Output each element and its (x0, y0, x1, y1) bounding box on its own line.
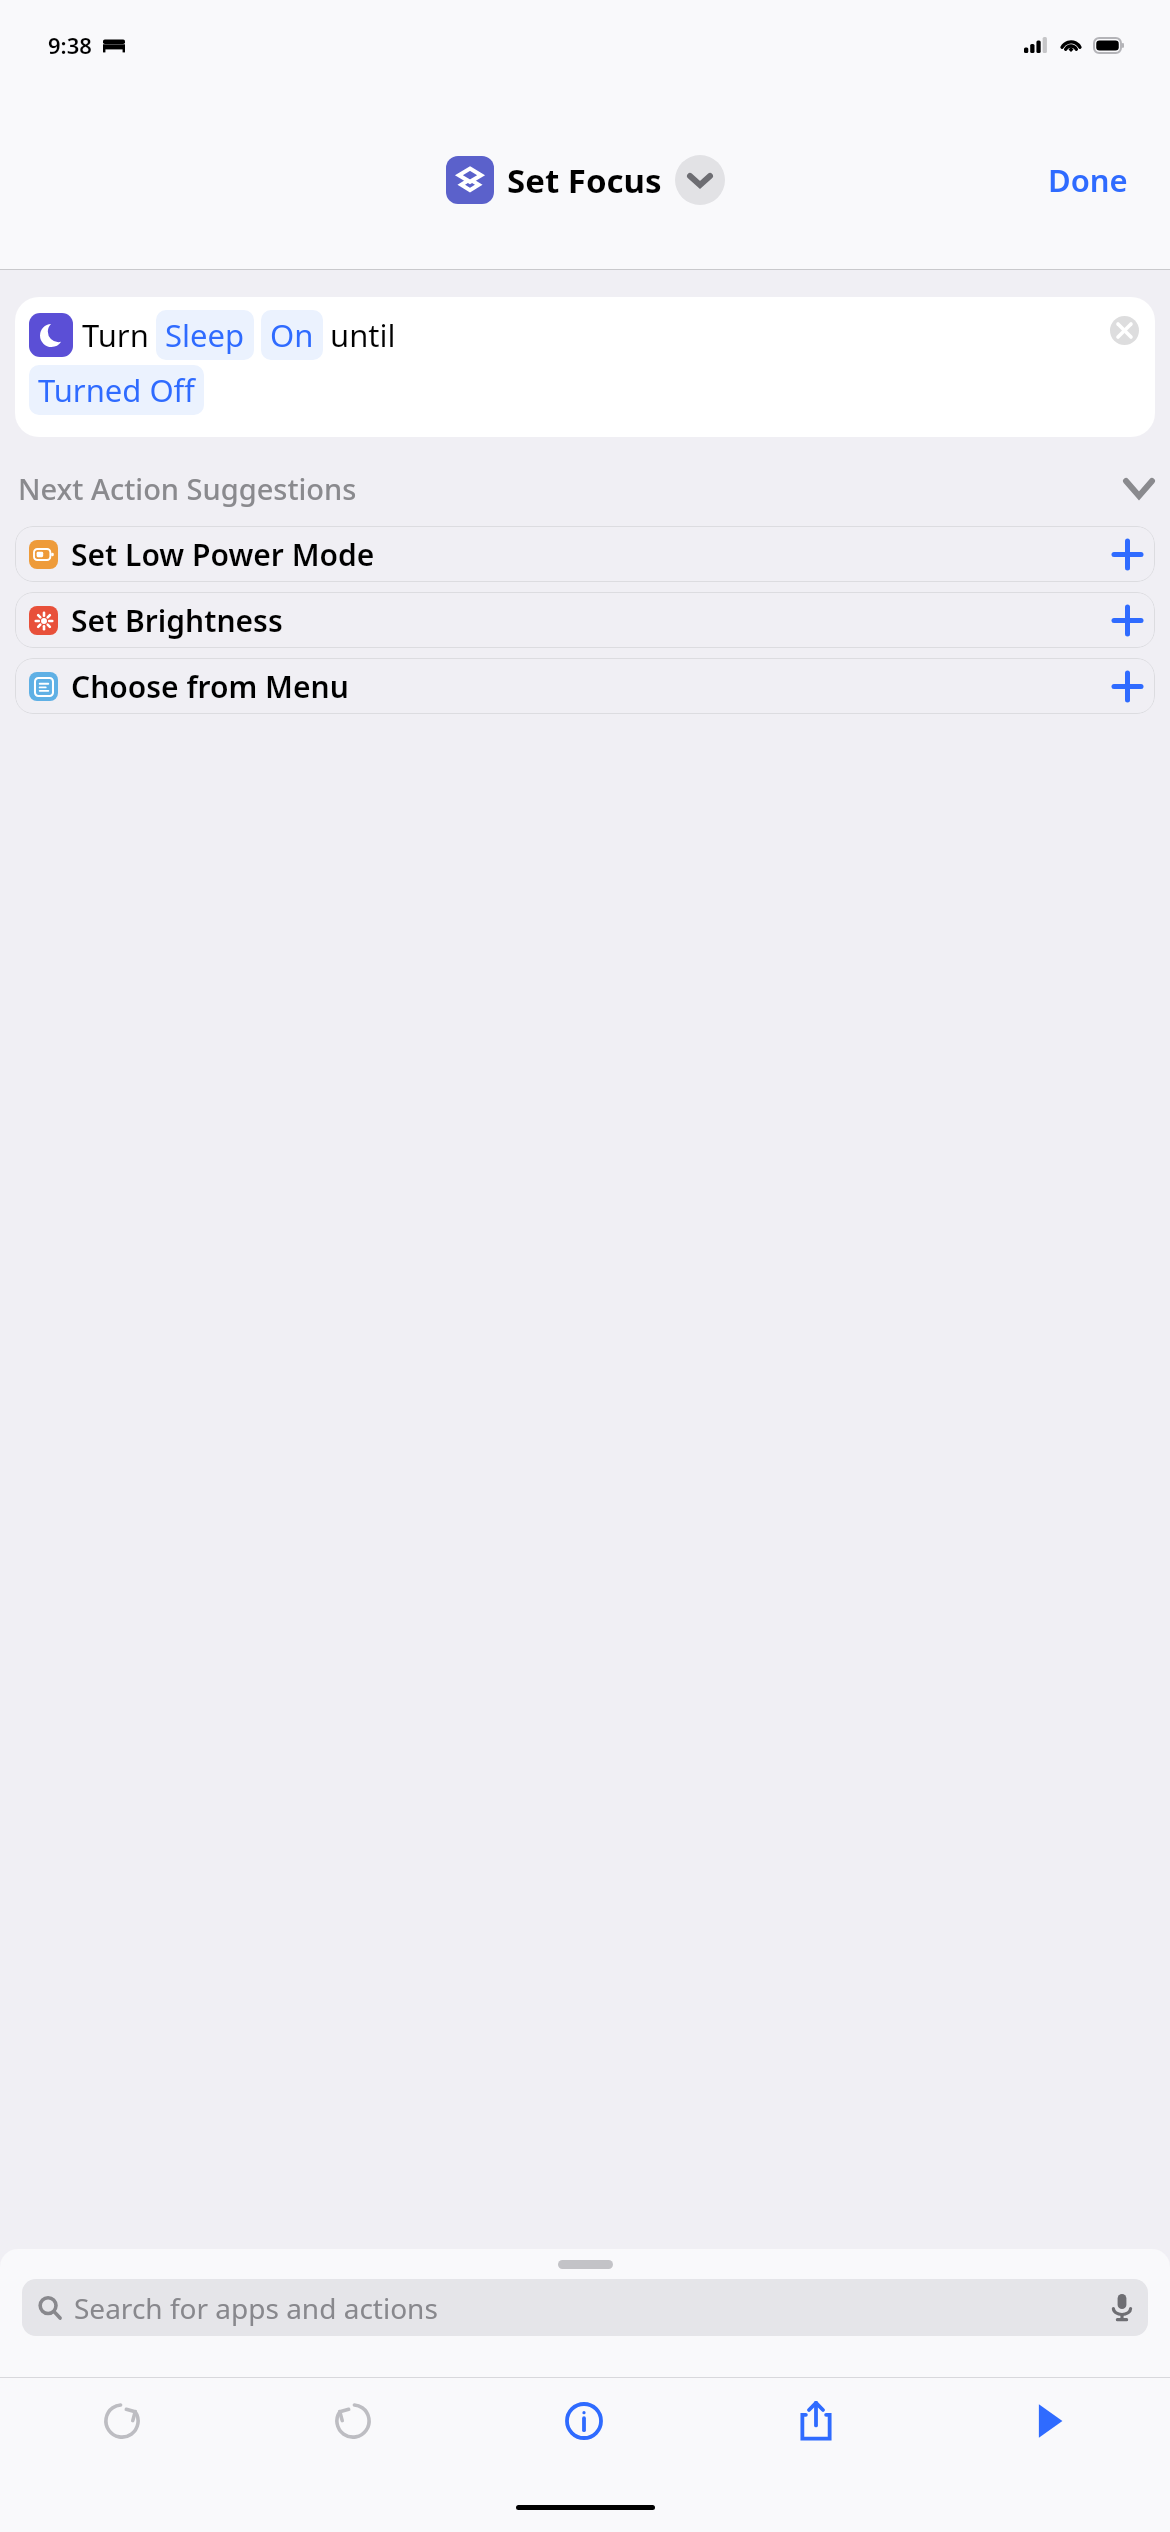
staticText: Next Action Suggestions (18, 469, 357, 508)
staticText: Sleep (165, 314, 245, 356)
staticText: Search for apps and actions (74, 2289, 438, 2327)
button[interactable]: Turn (15, 297, 1155, 437)
other: Voice search (1112, 2294, 1132, 2321)
button[interactable]: Done (1036, 151, 1140, 209)
button[interactable]: Set Low Power Mode (15, 526, 1155, 582)
button[interactable]: Undo (6, 2378, 237, 2464)
button[interactable]: Details (468, 2378, 700, 2464)
button[interactable]: Search for apps and actions (22, 2279, 1148, 2336)
button[interactable]: Share (700, 2378, 932, 2464)
staticText: Set Focus (507, 158, 662, 203)
button[interactable]: Redo (237, 2378, 468, 2464)
button[interactable]: Turned Off (29, 365, 204, 415)
button[interactable]: Choose from Menu (15, 658, 1155, 714)
staticText: Choose from Menu (71, 666, 349, 707)
staticText: 9:38 (48, 30, 92, 60)
staticText: Done (1048, 159, 1128, 201)
staticText: Turned Off (38, 369, 195, 411)
staticText: Set Brightness (71, 600, 283, 641)
button[interactable]: Sleep (156, 310, 254, 360)
button[interactable]: Shortcut options (675, 155, 725, 205)
staticText: Turn (82, 314, 149, 356)
staticText: Set Low Power Mode (71, 534, 375, 575)
staticText: until (330, 314, 396, 356)
button[interactable]: Set Brightness (15, 592, 1155, 648)
button[interactable]: Remove action (1110, 316, 1139, 345)
staticText: On (270, 314, 314, 356)
button[interactable]: On (261, 310, 323, 360)
button[interactable]: Next Action Suggestions (18, 469, 1152, 508)
button[interactable]: Run shortcut (932, 2378, 1164, 2464)
